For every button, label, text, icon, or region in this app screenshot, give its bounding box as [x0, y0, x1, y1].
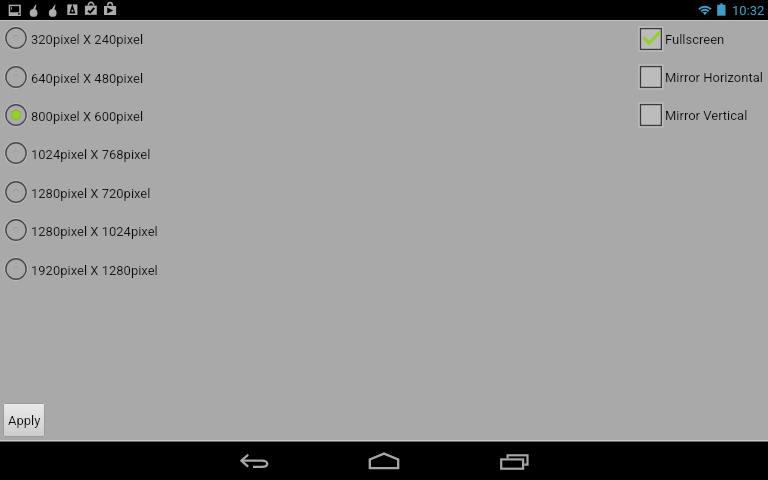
button[interactable]: Fullscreen: [639, 24, 768, 54]
button[interactable]: 1920pixel X 1280pixel: [4, 252, 234, 286]
staticText: Fullscreen: [665, 32, 725, 47]
staticText: 320pixel X 240pixel: [31, 32, 144, 47]
button[interactable]: Recent apps: [474, 442, 554, 480]
button[interactable]: Mirror Vertical: [639, 100, 768, 130]
staticText: 800pixel X 600pixel: [31, 109, 144, 124]
button[interactable]: Home: [344, 442, 424, 480]
staticText: 1280pixel X 720pixel: [31, 186, 151, 201]
button[interactable]: Back: [214, 442, 294, 480]
button[interactable]: 320pixel X 240pixel: [4, 21, 234, 55]
staticText: 1920pixel X 1280pixel: [31, 263, 158, 278]
button[interactable]: 800pixel X 600pixel: [4, 98, 234, 132]
button[interactable]: 1280pixel X 720pixel: [4, 175, 234, 209]
staticText: 640pixel X 480pixel: [31, 71, 144, 86]
staticText: Apply: [8, 413, 41, 428]
staticText: 1280pixel X 1024pixel: [31, 224, 158, 239]
staticText: 10:32: [732, 3, 765, 18]
button[interactable]: 640pixel X 480pixel: [4, 60, 234, 94]
staticText: 1024pixel X 768pixel: [31, 147, 151, 162]
button[interactable]: Apply: [3, 403, 45, 437]
staticText: Mirror Horizontal: [665, 70, 763, 85]
staticText: Mirror Vertical: [665, 108, 748, 123]
button[interactable]: 1280pixel X 1024pixel: [4, 213, 234, 247]
button[interactable]: Mirror Horizontal: [639, 62, 768, 92]
button[interactable]: 1024pixel X 768pixel: [4, 136, 234, 170]
